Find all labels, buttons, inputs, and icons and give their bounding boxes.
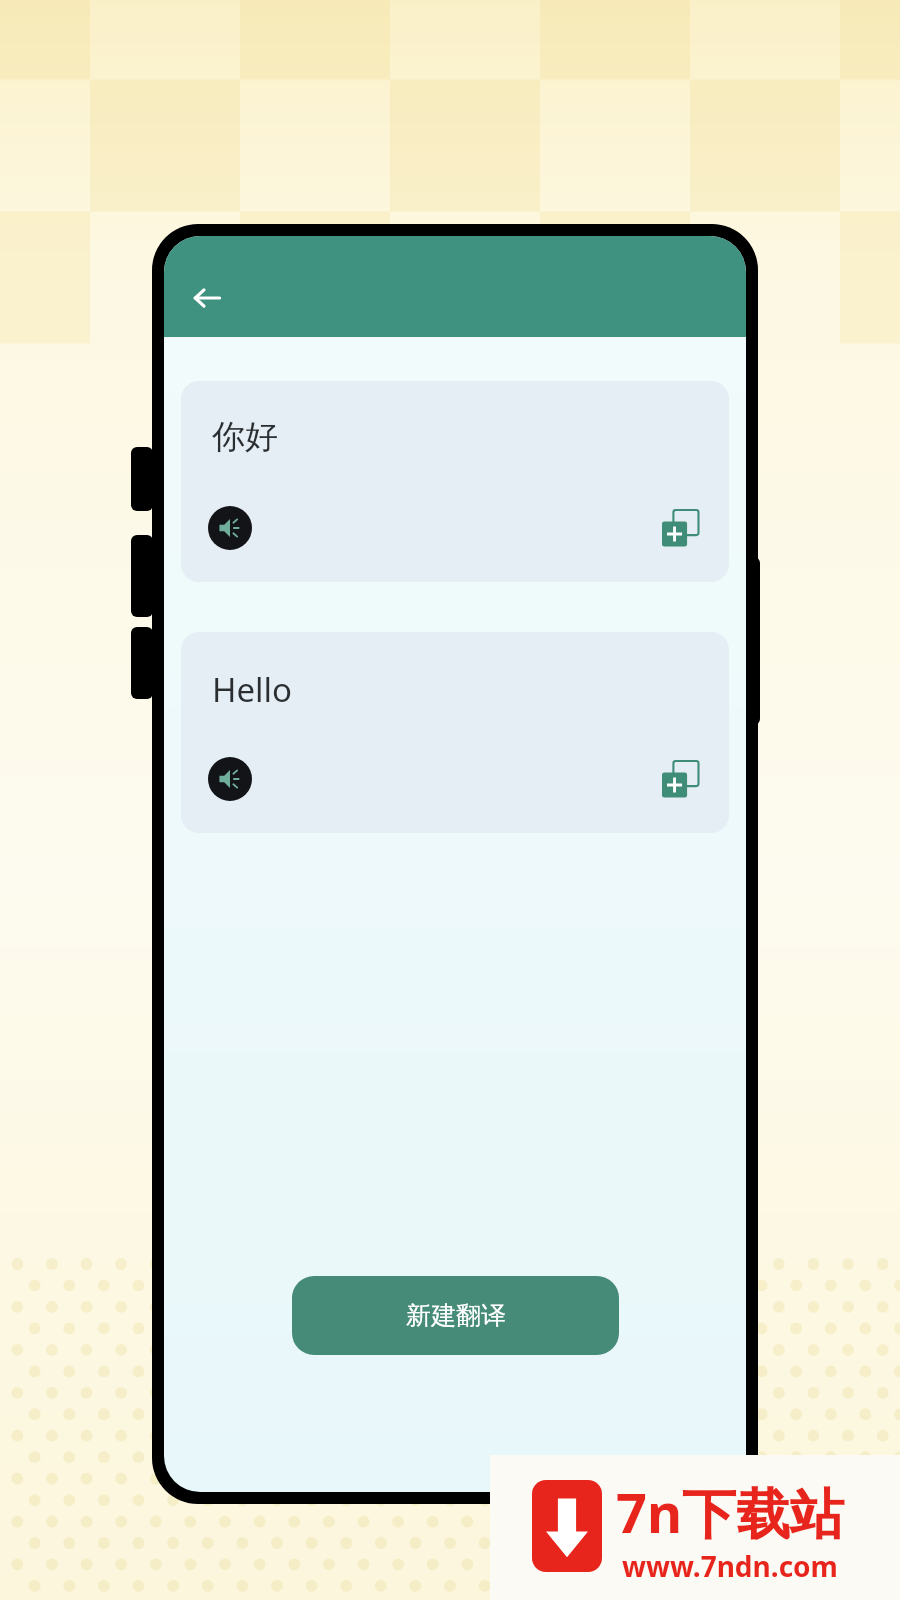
button[interactable]: 你好 (181, 381, 729, 582)
staticText: www.7ndn.com (622, 1547, 838, 1585)
button[interactable]: 新建翻译 (292, 1276, 619, 1355)
button[interactable]: Back (178, 269, 236, 327)
staticText: 新建翻译 (406, 1300, 506, 1331)
staticText: 7n下载站 (616, 1475, 844, 1549)
button[interactable]: Play pronunciation (208, 506, 252, 550)
staticText: 你好 (212, 416, 278, 458)
button[interactable]: Copy (658, 757, 704, 803)
staticText: Hello (212, 667, 293, 712)
button[interactable]: Hello (181, 632, 729, 833)
button[interactable]: Play pronunciation (208, 757, 252, 801)
button[interactable]: Copy (658, 506, 704, 552)
